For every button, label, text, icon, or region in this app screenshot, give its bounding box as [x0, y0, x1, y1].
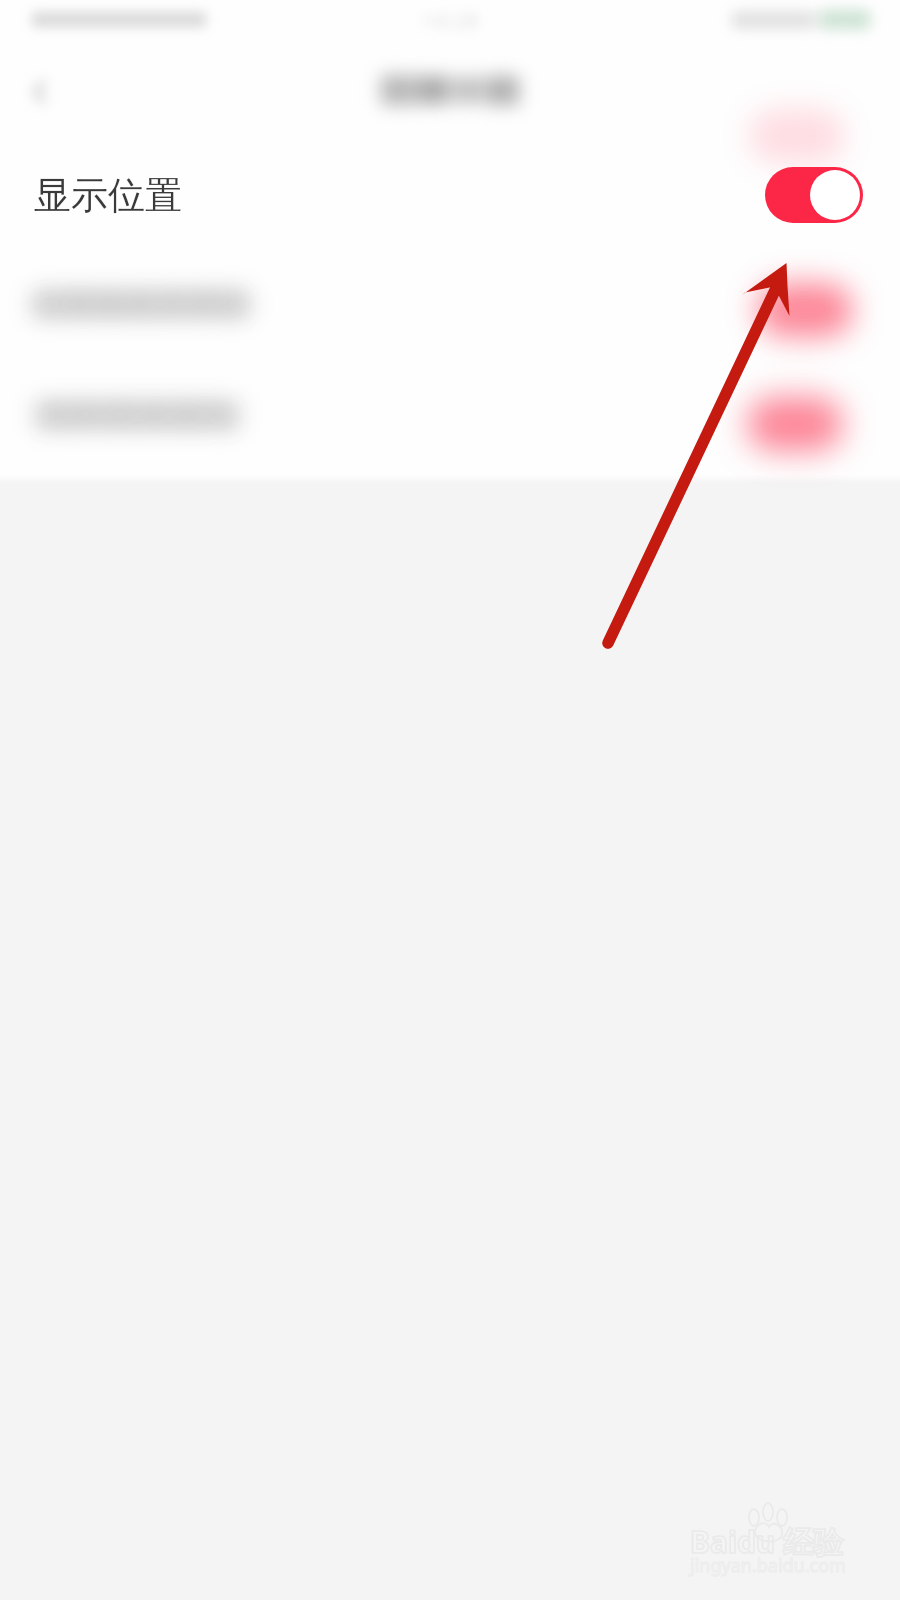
- staticText: 允许后台定位: [36, 394, 240, 437]
- button[interactable]: 显示位置: [0, 143, 900, 247]
- staticText: 位置服务共享设: [33, 285, 250, 324]
- staticText: 显示位置: [34, 172, 182, 219]
- button[interactable]: Location sharing settings row: [0, 252, 900, 356]
- button[interactable]: Background location row: [0, 363, 900, 467]
- other: Show location toggle, on: [765, 167, 863, 223]
- staticText: Baidu 经验: [690, 1521, 844, 1562]
- staticText: jingyan.baidu.com: [690, 1553, 846, 1578]
- button[interactable]: Back: [16, 66, 64, 118]
